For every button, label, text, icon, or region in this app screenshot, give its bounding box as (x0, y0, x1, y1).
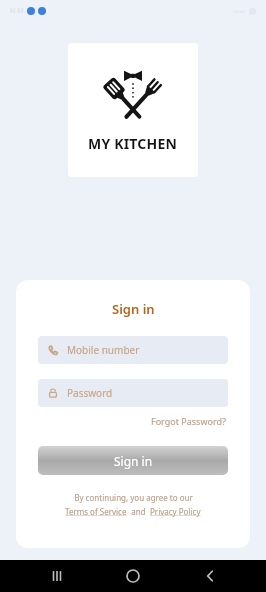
staticText: By continuing, you agree to our (74, 492, 193, 503)
button[interactable]: Recent apps (37, 560, 77, 592)
staticText: Privacy Policy (150, 506, 201, 517)
staticText: Terms of Service (65, 506, 127, 517)
button[interactable]: Forgot Password? (149, 413, 228, 429)
button[interactable]: Privacy Policy (150, 506, 201, 517)
staticText: N M (10, 6, 24, 16)
staticText: MY KITCHEN (88, 134, 178, 153)
staticText: Forgot Password? (151, 415, 226, 427)
staticText: Mobile number (67, 343, 140, 357)
staticText: Password (67, 386, 113, 400)
button[interactable]: Home (113, 560, 153, 592)
button[interactable]: Back (190, 560, 230, 592)
button[interactable]: Mobile number (38, 336, 228, 364)
button[interactable]: Sign in (38, 446, 228, 475)
staticText: Sign in (112, 300, 155, 318)
button[interactable]: Terms of Service (65, 506, 127, 517)
staticText: Sign in (114, 453, 153, 469)
button[interactable]: Password (38, 379, 228, 407)
staticText: and (127, 506, 150, 517)
